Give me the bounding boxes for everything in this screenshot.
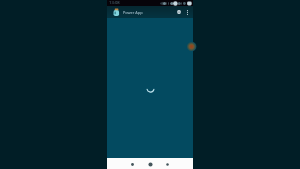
staticText: Power App	[123, 10, 143, 15]
button[interactable]: Back	[126, 158, 138, 169]
button[interactable]: More options	[183, 6, 192, 18]
button[interactable]: Home	[144, 158, 156, 169]
staticText: 13:08	[109, 0, 120, 6]
button[interactable]: Recents	[161, 158, 173, 169]
button[interactable]: Account	[174, 6, 183, 18]
